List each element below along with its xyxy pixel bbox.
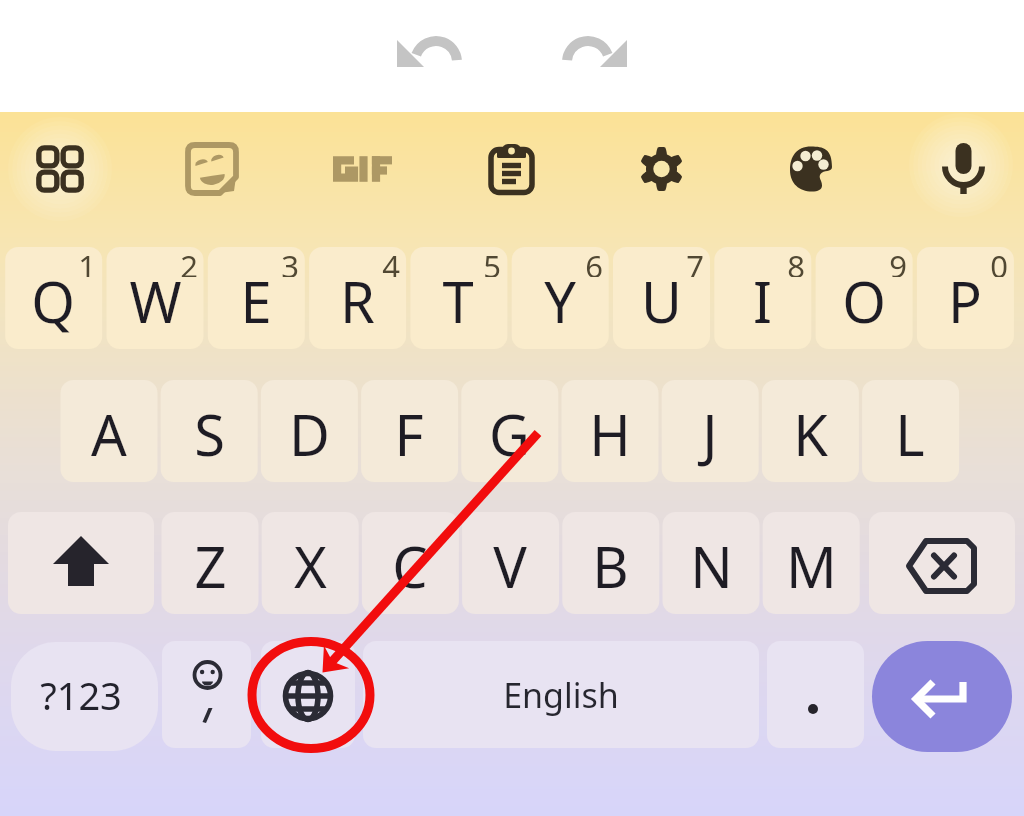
staticText: J <box>702 396 718 472</box>
staticText: U <box>641 263 682 339</box>
button[interactable]: Period <box>768 643 858 748</box>
button[interactable]: Emoji <box>163 643 253 748</box>
staticText: 3 <box>281 245 299 277</box>
staticText: 5 <box>483 245 501 277</box>
staticText: Q <box>31 263 75 339</box>
button[interactable]: Z <box>159 515 261 617</box>
button[interactable]: D <box>258 383 360 485</box>
staticText: P <box>948 263 982 339</box>
button[interactable]: GIF <box>319 127 403 211</box>
button[interactable]: G <box>458 383 560 485</box>
staticText: V <box>493 528 527 604</box>
button[interactable]: C <box>359 515 461 617</box>
button[interactable]: Settings <box>619 127 703 211</box>
staticText: 7 <box>686 245 704 277</box>
staticText: 4 <box>382 245 400 277</box>
button[interactable]: Clipboard <box>469 127 553 211</box>
button[interactable]: Open keyboard modes <box>18 127 102 211</box>
button[interactable]: N <box>660 515 762 617</box>
staticText: S <box>194 396 225 472</box>
button[interactable]: M <box>760 515 862 617</box>
button[interactable]: Y <box>509 250 611 352</box>
staticText: D <box>289 396 330 472</box>
button[interactable]: P <box>914 250 1016 352</box>
staticText: 9 <box>889 245 907 277</box>
staticText: O <box>842 263 886 339</box>
staticText: 1 <box>78 245 96 277</box>
button[interactable]: T <box>407 250 509 352</box>
button[interactable]: Symbols <box>14 643 155 748</box>
button[interactable]: L <box>859 383 961 485</box>
button[interactable]: E <box>205 250 307 352</box>
staticText: F <box>394 396 424 472</box>
staticText: M <box>786 528 837 604</box>
staticText: English <box>503 672 619 718</box>
button[interactable]: S <box>158 383 260 485</box>
button[interactable]: R <box>306 250 408 352</box>
button[interactable]: Backspace <box>872 512 1018 614</box>
staticText: A <box>91 396 127 472</box>
button[interactable]: Redo <box>548 20 652 90</box>
staticText: L <box>895 396 925 472</box>
staticText: 6 <box>585 245 603 277</box>
button[interactable]: Enter <box>871 643 1012 753</box>
button[interactable]: O <box>813 250 915 352</box>
button[interactable]: Undo <box>376 20 480 90</box>
button[interactable]: H <box>559 383 661 485</box>
staticText: B <box>592 528 629 604</box>
button[interactable]: Voice input <box>920 124 1004 208</box>
button[interactable]: A <box>58 383 160 485</box>
button[interactable]: V <box>459 515 561 617</box>
staticText: Y <box>544 263 576 339</box>
staticText: T <box>442 263 474 339</box>
staticText: X <box>294 528 327 604</box>
staticText: 8 <box>787 245 805 277</box>
staticText: 2 <box>180 245 198 277</box>
button[interactable]: U <box>610 250 712 352</box>
button[interactable]: J <box>659 383 761 485</box>
button[interactable]: X <box>259 515 361 617</box>
staticText: C <box>392 528 428 604</box>
button[interactable]: K <box>759 383 861 485</box>
button[interactable]: B <box>559 515 661 617</box>
button[interactable]: Themes <box>769 127 853 211</box>
staticText: ?123 <box>40 669 122 721</box>
staticText: H <box>589 396 631 472</box>
staticText: E <box>240 263 272 339</box>
button[interactable]: Shift <box>8 512 154 614</box>
button[interactable]: Stickers <box>169 127 253 211</box>
staticText: G <box>489 396 530 472</box>
staticText: 0 <box>990 245 1008 277</box>
staticText: N <box>690 528 733 604</box>
staticText: W <box>129 263 182 339</box>
button[interactable]: F <box>358 383 460 485</box>
staticText: K <box>793 396 828 472</box>
staticText: R <box>340 263 375 339</box>
button[interactable]: W <box>104 250 206 352</box>
staticText: Z <box>194 528 227 604</box>
button[interactable]: I <box>711 250 813 352</box>
staticText: I <box>753 263 772 339</box>
button[interactable]: Change language <box>261 643 355 748</box>
button[interactable]: Q <box>2 250 104 352</box>
